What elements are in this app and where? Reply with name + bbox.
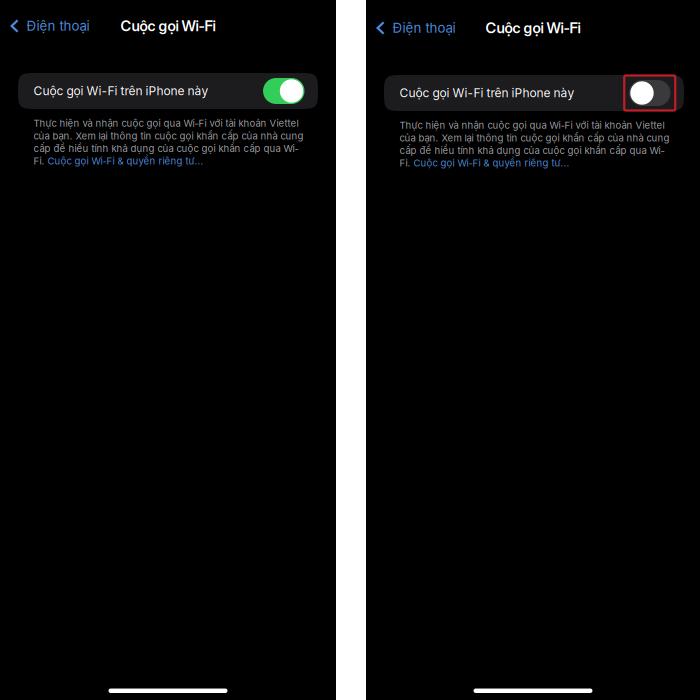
button[interactable]: Cuộc gọi Wi-Fi trên iPhone này [629, 80, 670, 106]
staticText: Cuộc gọi Wi-Fi trên iPhone này [399, 86, 574, 100]
button[interactable]: Cuộc gọi Wi-Fi & quyền riêng tư... [47, 155, 203, 167]
staticText: Thực hiện và nhận cuộc gọi qua Wi-Fi với… [33, 117, 298, 129]
staticText: Cuộc gọi Wi-Fi trên iPhone này [33, 84, 208, 98]
staticText: của bạn. Xem lại thông tin cuộc gọi khẩn… [399, 132, 669, 144]
staticText: Điện thoại [392, 20, 455, 36]
button[interactable]: Cuộc gọi Wi-Fi & quyền riêng tư... [413, 157, 569, 169]
button[interactable]: Điện thoại [0, 15, 95, 37]
staticText: Fi. [399, 157, 413, 169]
staticText: của bạn. Xem lại thông tin cuộc gọi khẩn… [33, 130, 303, 142]
staticText: Cuộc gọi Wi-Fi & quyền riêng tư... [47, 155, 203, 167]
staticText: Cuộc gọi Wi-Fi [485, 19, 580, 37]
staticText: Thực hiện và nhận cuộc gọi qua Wi-Fi với… [399, 119, 664, 131]
button[interactable]: Cuộc gọi Wi-Fi trên iPhone này [263, 78, 304, 104]
staticText: Điện thoại [26, 18, 89, 34]
staticText: cấp để hiểu tính khả dụng của cuộc gọi k… [33, 143, 298, 154]
staticText: cấp để hiểu tính khả dụng của cuộc gọi k… [399, 145, 664, 156]
staticText: Fi. [33, 155, 47, 167]
button[interactable]: Điện thoại [366, 17, 461, 39]
staticText: Cuộc gọi Wi-Fi & quyền riêng tư... [413, 157, 569, 169]
staticText: Cuộc gọi Wi-Fi [120, 17, 215, 35]
